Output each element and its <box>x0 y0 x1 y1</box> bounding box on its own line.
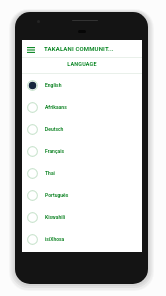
staticText: Kiswahili <box>45 214 66 220</box>
button[interactable]: Kiswahili <box>22 206 142 228</box>
button[interactable]: Português <box>22 184 142 206</box>
button[interactable]: Deutsch <box>22 118 142 140</box>
staticText: Thai <box>45 170 55 176</box>
button[interactable]: Afrikaans <box>22 96 142 118</box>
button[interactable]: Français <box>22 140 142 162</box>
staticText: TAKALANI COMMUNIT... <box>44 45 114 52</box>
staticText: Français <box>45 148 65 154</box>
staticText: LANGUAGE <box>67 61 97 67</box>
button[interactable]: Thai <box>22 162 142 184</box>
staticText: Português <box>45 192 69 198</box>
staticText: English <box>45 82 62 88</box>
button[interactable]: English <box>22 74 142 96</box>
staticText: Deutsch <box>45 126 64 132</box>
staticText: Afrikaans <box>45 104 67 110</box>
button[interactable]: Open navigation menu <box>25 42 37 55</box>
staticText: isiXhosa <box>45 236 65 242</box>
button[interactable]: isiXhosa <box>22 228 142 250</box>
